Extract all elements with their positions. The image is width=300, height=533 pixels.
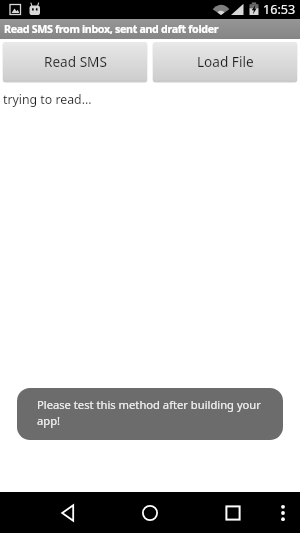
staticText: Please test this method after building y… <box>37 397 267 428</box>
button[interactable]: Load File <box>153 42 297 80</box>
staticText: Read SMS <box>44 52 107 71</box>
staticText: trying to read... <box>3 91 92 108</box>
staticText: 16:53 <box>263 1 296 18</box>
staticText: Read SMS from inbox, sent and draft fold… <box>4 22 219 37</box>
button[interactable]: More options <box>266 492 300 533</box>
button[interactable]: Home <box>128 492 172 533</box>
staticText: Load File <box>197 52 254 71</box>
button[interactable]: Read SMS <box>3 42 147 80</box>
button[interactable]: Back <box>47 492 91 533</box>
button[interactable]: Recent apps <box>211 492 255 533</box>
